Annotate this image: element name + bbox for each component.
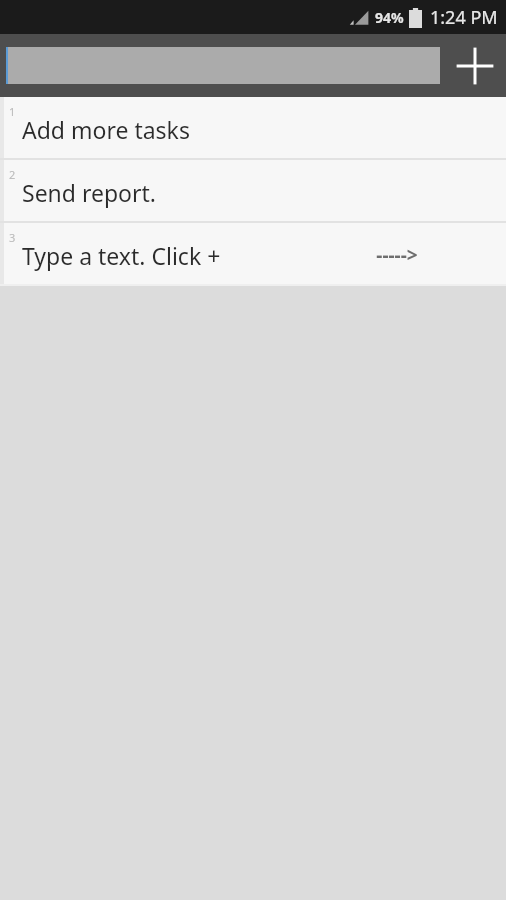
staticText: 1:24 PM	[430, 5, 498, 30]
staticText: 94%	[375, 8, 404, 27]
staticText: Send report.	[22, 177, 156, 208]
staticText: 3	[9, 230, 16, 245]
button[interactable]: 3	[0, 223, 506, 284]
staticText: Add more tasks	[22, 114, 190, 145]
button[interactable]: Add task	[444, 34, 506, 97]
staticText: 2	[9, 167, 16, 182]
staticText: Type a text. Click +	[22, 240, 221, 271]
staticText: ----->	[376, 242, 418, 268]
button[interactable]	[6, 47, 440, 84]
button[interactable]: 1	[0, 97, 506, 158]
staticText: 1	[9, 104, 16, 119]
button[interactable]: 2	[0, 160, 506, 221]
